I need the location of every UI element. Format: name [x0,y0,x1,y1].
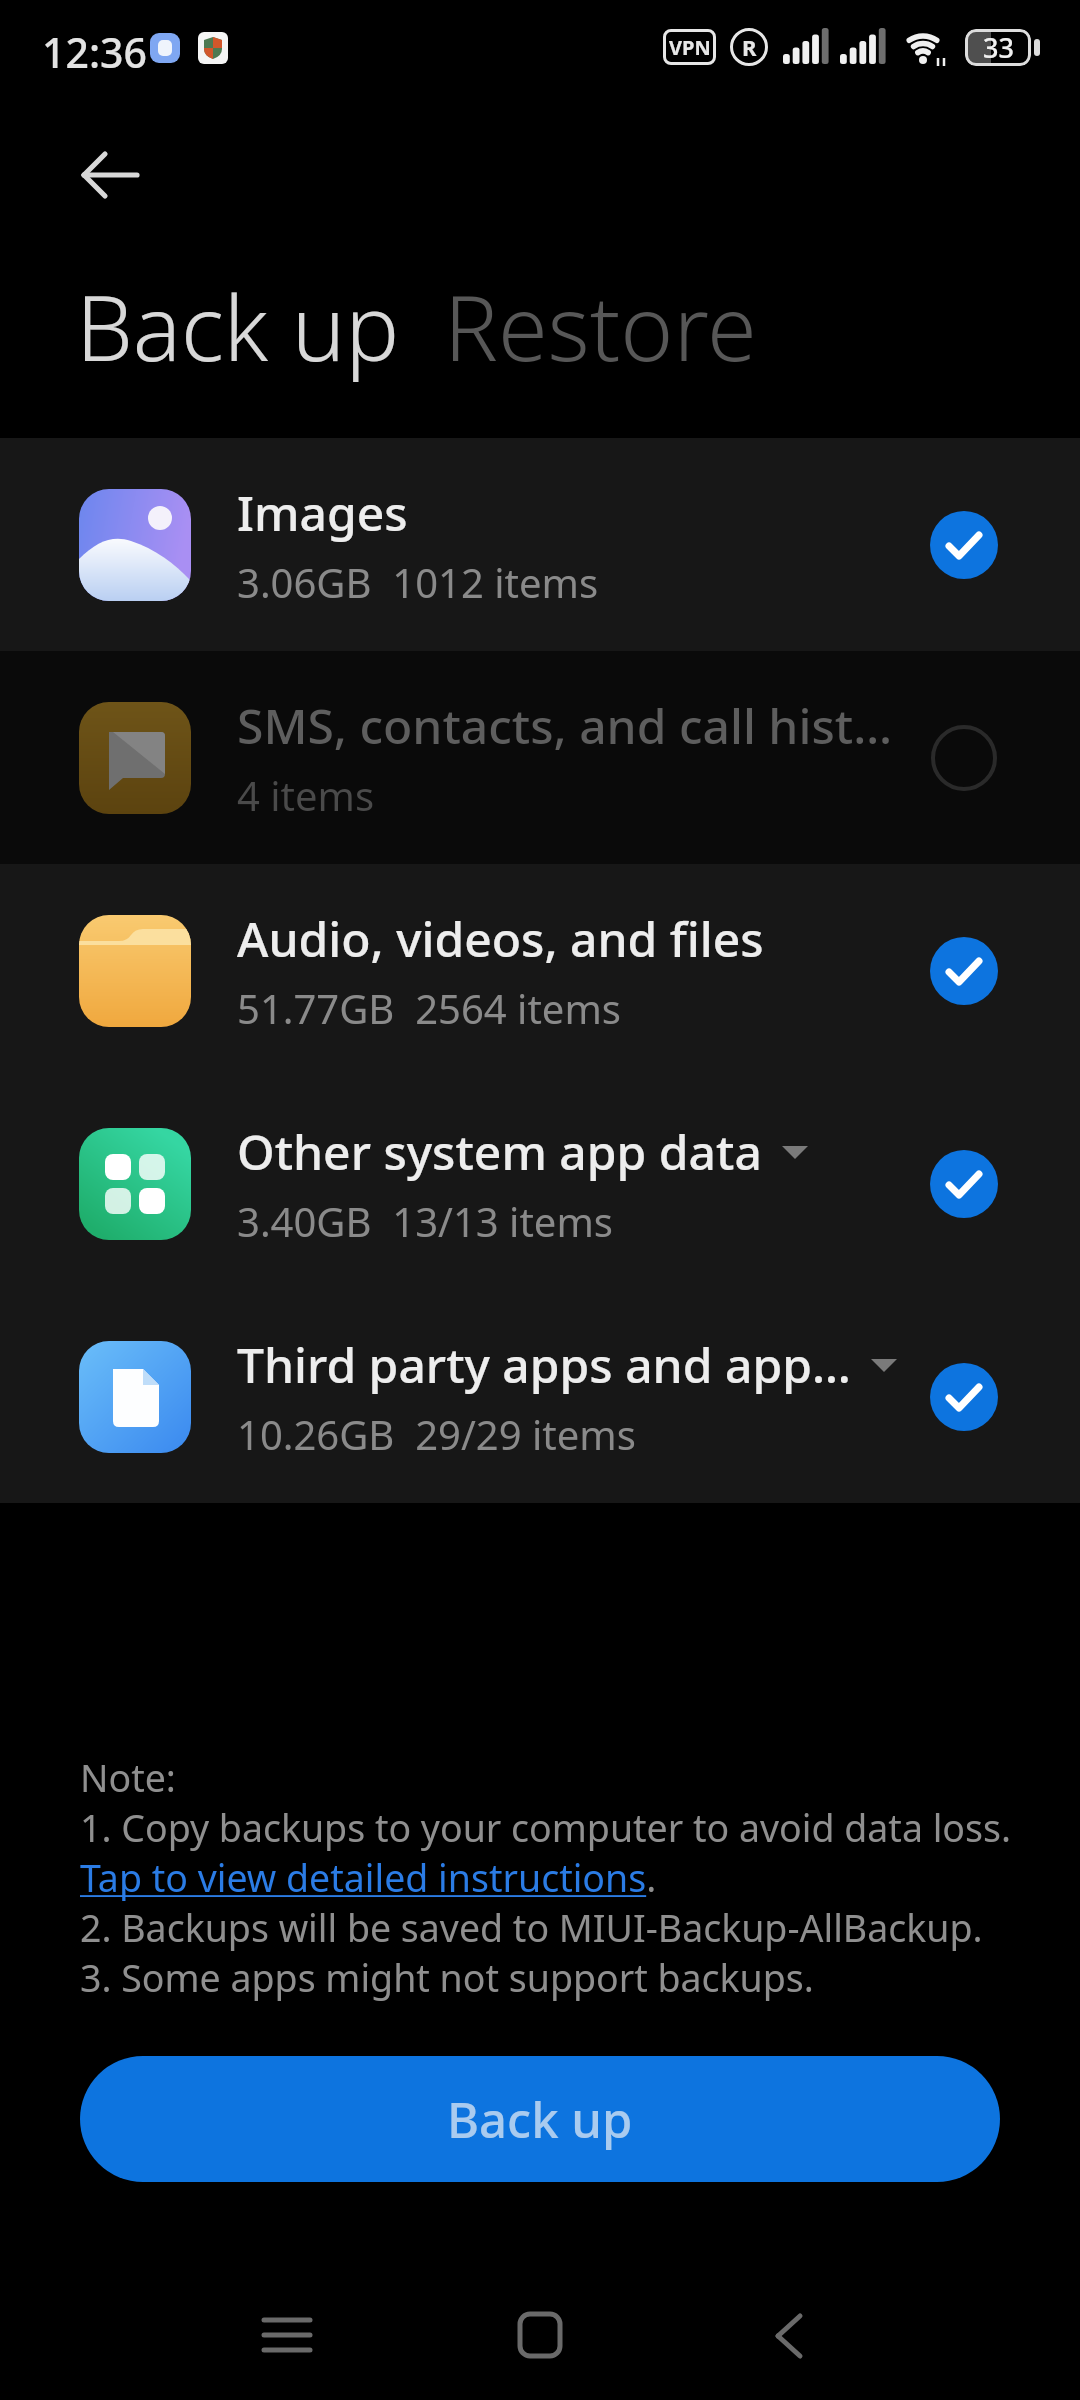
button[interactable]: Third party apps and app… [0,1290,1080,1503]
button[interactable]: SMS, contacts, and call hist… [0,651,1080,864]
staticText: 3.40GB 13/13 items [237,1194,613,1248]
staticText: 12:36 [42,24,147,80]
staticText: 3.06GB 1012 items [237,555,599,609]
button[interactable]: Note: 1. Copy backups to your computer t… [80,1752,1012,2003]
button[interactable]: Other system app data [0,1077,1080,1290]
button[interactable] [518,2312,562,2358]
button[interactable]: Audio, videos, and files [0,864,1080,1077]
staticText: Back up [447,2086,633,2153]
staticText: Third party apps and app… [237,1332,851,1397]
button[interactable]: Images [0,438,1080,651]
staticText: Images [237,480,408,545]
staticText: 33 [983,29,1014,66]
staticText: R [742,32,757,62]
button[interactable] [81,152,139,198]
staticText: Other system app data [237,1119,762,1184]
button[interactable] [772,2314,804,2358]
button[interactable] [264,2313,310,2357]
button[interactable]: Back up [76,265,400,388]
staticText: 51.77GB 2564 items [237,981,621,1035]
staticText: Audio, videos, and files [237,906,764,971]
button[interactable]: Back up [80,2056,1000,2182]
staticText: SMS, contacts, and call hist… [237,693,893,758]
staticText: 10.26GB 29/29 items [237,1407,636,1461]
staticText: VPN [669,34,711,61]
staticText: 4 items [237,768,375,822]
button[interactable]: Restore [444,265,757,388]
